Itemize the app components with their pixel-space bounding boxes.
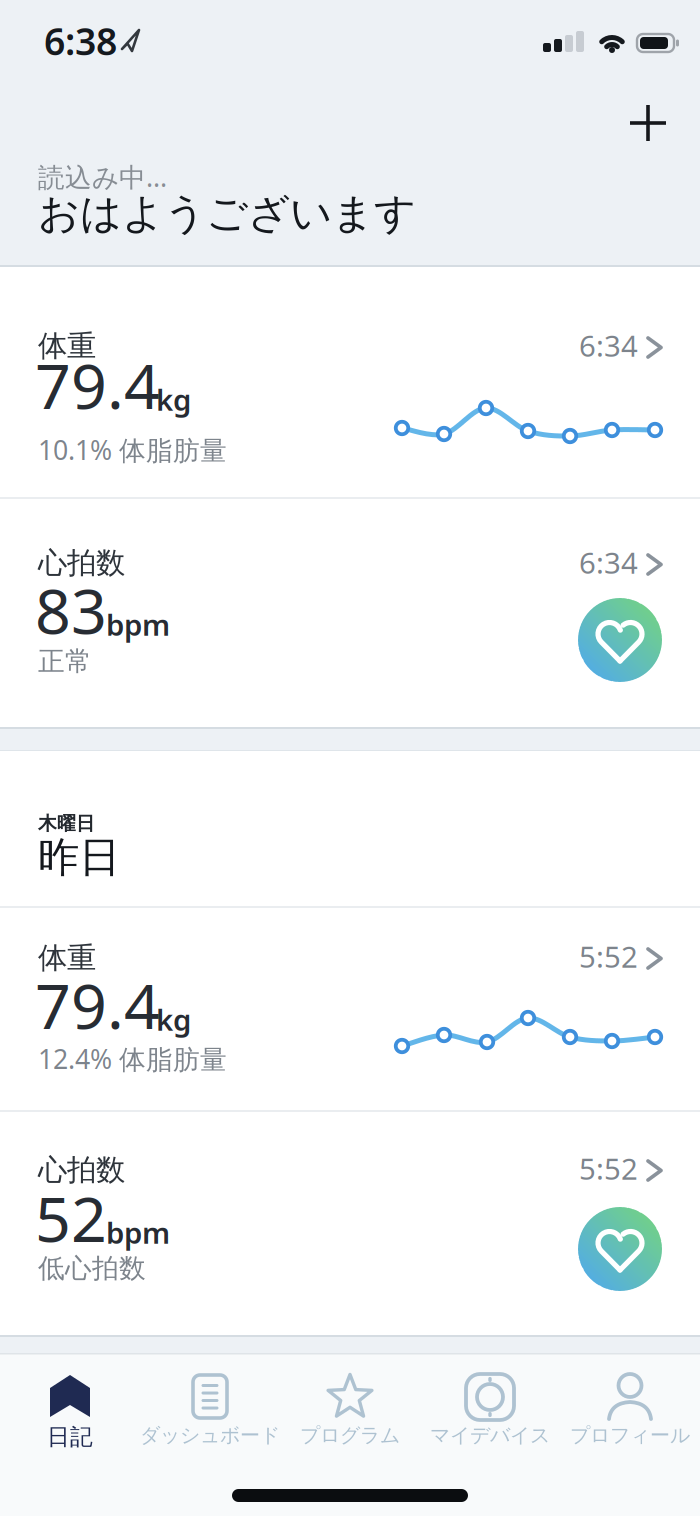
staticText: 79.4: [35, 343, 160, 426]
staticText: 木曜日: [38, 812, 95, 835]
button[interactable]: ダッシュボード: [140, 1373, 280, 1461]
staticText: 79.4: [35, 963, 160, 1046]
staticText: 5:52: [579, 937, 638, 976]
staticText: kg: [156, 380, 191, 419]
button[interactable]: 追加: [630, 105, 666, 141]
staticText: 6:34: [579, 543, 638, 582]
staticText: 体重: [38, 940, 96, 976]
staticText: bpm: [106, 1213, 170, 1252]
staticText: 読込み中...: [38, 159, 167, 194]
staticText: 10.1% 体脂肪量: [38, 432, 227, 467]
staticText: kg: [156, 1000, 191, 1039]
staticText: 6:38: [44, 16, 117, 66]
staticText: 5:52: [579, 1149, 638, 1188]
staticText: プロフィール: [570, 1423, 690, 1448]
staticText: 低心拍数: [38, 1252, 146, 1285]
staticText: 心拍数: [38, 1152, 125, 1188]
staticText: プログラム: [300, 1423, 400, 1448]
staticText: 12.4% 体脂肪量: [38, 1041, 227, 1076]
staticText: 83: [35, 568, 107, 651]
button[interactable]: 心拍数: [0, 1112, 700, 1335]
button[interactable]: 日記: [0, 1373, 140, 1461]
button[interactable]: 体重: [0, 267, 700, 497]
staticText: bpm: [106, 605, 170, 644]
staticText: ダッシュボード: [140, 1423, 280, 1448]
staticText: 昨日: [38, 832, 120, 883]
button[interactable]: プロフィール: [560, 1373, 700, 1461]
button[interactable]: プログラム: [280, 1373, 420, 1461]
button[interactable]: マイデバイス: [420, 1373, 560, 1461]
staticText: おはようございます: [38, 188, 416, 239]
staticText: 52: [35, 1176, 107, 1259]
staticText: 体重: [38, 328, 96, 364]
staticText: マイデバイス: [430, 1423, 550, 1448]
staticText: 6:34: [579, 326, 638, 365]
staticText: 正常: [38, 645, 92, 678]
staticText: 心拍数: [38, 545, 125, 581]
button[interactable]: 心拍数: [0, 499, 700, 727]
staticText: 日記: [47, 1423, 93, 1451]
button[interactable]: 体重: [0, 908, 700, 1110]
